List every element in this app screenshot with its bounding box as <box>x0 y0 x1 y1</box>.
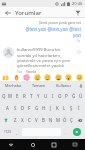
staticText: O <box>58 93 62 99</box>
staticText: Ö <box>63 117 67 123</box>
button[interactable]: Kullanıcı <box>51 81 76 90</box>
staticText: K <box>56 105 59 111</box>
button[interactable]: F <box>26 103 33 113</box>
button[interactable]: Emoji <box>75 74 84 81</box>
button[interactable]: Beğen <box>76 49 82 55</box>
staticText: A <box>6 105 9 111</box>
staticText: X <box>21 117 24 123</box>
staticText: E <box>16 93 19 99</box>
staticText: G <box>35 105 39 111</box>
staticText: Ç <box>70 117 73 123</box>
staticText: 20:46 <box>72 1 83 6</box>
button[interactable]: G <box>33 103 40 113</box>
staticText: W <box>8 93 13 99</box>
button[interactable]: M <box>54 115 61 125</box>
staticText: N <box>49 117 53 123</box>
staticText: V <box>35 117 38 123</box>
button[interactable]: Emoji <box>64 74 73 81</box>
button[interactable]: Son uygulamalar <box>43 139 64 150</box>
button[interactable]: İ <box>75 103 82 113</box>
button[interactable]: Ğ <box>70 91 77 101</box>
button[interactable]: I <box>49 91 56 101</box>
button[interactable]: P <box>63 91 70 101</box>
staticText: Z <box>14 117 17 123</box>
button[interactable]: Z <box>11 115 19 125</box>
staticText: U <box>44 93 48 99</box>
staticText: ?123 <box>4 130 11 134</box>
button[interactable]: Tamam <box>26 81 51 90</box>
button[interactable]: Shift <box>2 115 10 125</box>
button[interactable]: Emoji <box>22 74 31 81</box>
button[interactable]: Ç <box>68 115 75 125</box>
staticText: Yorumlar <box>15 9 42 17</box>
staticText: Q <box>2 93 6 99</box>
button[interactable]: Ana ekran <box>22 139 43 150</box>
button[interactable]: V <box>33 115 40 125</box>
button[interactable]: Emoji <box>12 74 21 81</box>
staticText: Tamam <box>32 83 46 88</box>
button[interactable]: T <box>28 91 35 101</box>
button[interactable]: Sil <box>76 115 83 125</box>
staticText: , <box>16 130 18 135</box>
button[interactable]: Ş <box>68 103 75 113</box>
staticText: kullanici9999 Bunu bir sonraki yıl hazır… <box>17 47 76 68</box>
button[interactable]: E <box>14 91 21 101</box>
staticText: R <box>23 93 26 99</box>
button[interactable]: Geri <box>3 8 12 17</box>
button[interactable]: Filtrele <box>73 8 82 17</box>
button[interactable]: kullanici9999 Bunu bir sonraki yıl hazır… <box>0 43 85 74</box>
staticText: Şimdi yorum şimdi gene net <box>38 21 81 25</box>
staticText: B <box>42 117 45 123</box>
staticText: P <box>65 93 68 99</box>
button[interactable]: L <box>61 103 68 113</box>
button[interactable]: Gönder <box>73 128 81 136</box>
button[interactable]: N <box>47 115 54 125</box>
staticText: @test yazı @test.yazı @test yazı <box>18 26 81 38</box>
button[interactable]: C <box>26 115 33 125</box>
button[interactable]: K <box>54 103 61 113</box>
staticText: H <box>42 105 46 111</box>
button[interactable]: A <box>3 103 11 113</box>
button[interactable]: Ü <box>77 91 84 101</box>
button[interactable]: O <box>56 91 63 101</box>
button[interactable]: Şimdi yorum şimdi gene net <box>0 18 85 43</box>
button[interactable]: U <box>42 91 49 101</box>
button[interactable]: Geri <box>0 139 22 150</box>
button[interactable]: D <box>19 103 26 113</box>
button[interactable]: Y <box>35 91 42 101</box>
staticText: Ğ <box>72 93 76 99</box>
button[interactable]: R <box>21 91 28 101</box>
button[interactable]: Emoji <box>54 74 63 81</box>
button[interactable]: Emoji <box>33 74 42 81</box>
button[interactable]: Yanıtla <box>26 70 37 74</box>
staticText: D <box>21 105 25 111</box>
staticText: Y <box>37 93 40 99</box>
staticText: J <box>50 105 52 111</box>
button[interactable]: Merhaba <box>0 81 26 90</box>
button[interactable]: , <box>14 127 20 137</box>
button[interactable]: H <box>40 103 47 113</box>
staticText: L <box>63 105 66 111</box>
button[interactable]: Q <box>1 91 7 101</box>
button[interactable]: J <box>47 103 54 113</box>
staticText: F <box>28 105 31 111</box>
staticText: C <box>28 117 31 123</box>
button[interactable]: Ö <box>61 115 68 125</box>
button[interactable]: Emoji <box>43 74 52 81</box>
staticText: T <box>30 93 33 99</box>
button[interactable]: X <box>19 115 26 125</box>
button[interactable]: Klavye <box>64 139 85 150</box>
staticText: Kullanıcı <box>56 83 71 88</box>
staticText: Merhaba <box>5 83 22 88</box>
button[interactable]: Emoji <box>1 74 10 81</box>
button[interactable]: S <box>11 103 19 113</box>
staticText: . <box>65 130 67 135</box>
button[interactable]: ?123 <box>2 127 12 137</box>
button[interactable]: B <box>40 115 47 125</box>
staticText: 1s <box>77 39 81 43</box>
button[interactable]: Sesle yaz <box>76 81 85 90</box>
staticText: İ <box>78 105 80 111</box>
button[interactable]: . <box>63 127 69 137</box>
button[interactable]: W <box>7 91 14 101</box>
